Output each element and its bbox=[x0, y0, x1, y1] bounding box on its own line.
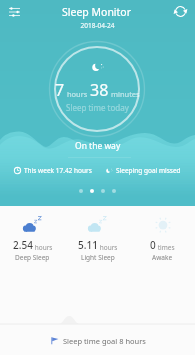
staticText: Sleep Monitor bbox=[62, 5, 132, 19]
button[interactable]: Sync bbox=[165, 0, 195, 23]
staticText: hours bbox=[33, 243, 53, 252]
staticText: Sleep time today bbox=[66, 102, 129, 113]
button[interactable]: 2.54 bbox=[0, 213, 65, 262]
staticText: On the way bbox=[75, 140, 121, 152]
button[interactable]: Sleep time goal 8 hours bbox=[0, 326, 195, 355]
staticText: hours bbox=[98, 243, 118, 252]
staticText: hours bbox=[65, 89, 90, 99]
staticText: Sleep time goal 8 hours bbox=[63, 336, 146, 346]
staticText: times bbox=[156, 243, 175, 252]
staticText: 7 bbox=[55, 79, 65, 101]
staticText: 38 bbox=[90, 79, 109, 101]
button[interactable]: 5.11 bbox=[65, 213, 130, 262]
staticText: Deep Sleep bbox=[15, 253, 50, 262]
staticText: 0 bbox=[150, 238, 156, 252]
button[interactable]: Settings bbox=[0, 0, 29, 23]
staticText: minutes bbox=[109, 89, 140, 99]
staticText: Awake bbox=[152, 253, 173, 262]
staticText: 2.54 bbox=[13, 238, 33, 252]
staticText: Light Sleep bbox=[81, 253, 115, 262]
staticText: 5.11 bbox=[78, 238, 98, 252]
staticText: 2018-04-24 bbox=[0, 21, 195, 30]
staticText: Sleeping goal missed bbox=[116, 166, 181, 175]
staticText: This week 17.42 hours bbox=[24, 166, 92, 175]
button[interactable]: 0 bbox=[130, 213, 195, 262]
